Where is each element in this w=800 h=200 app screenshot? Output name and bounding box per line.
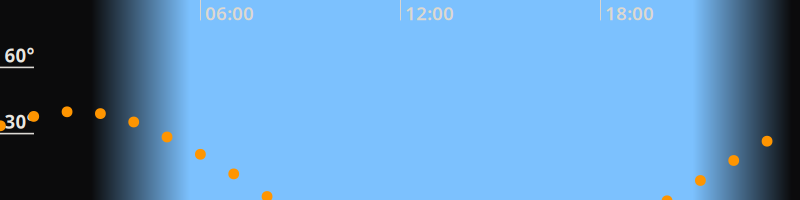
staticText: 30°	[4, 109, 34, 134]
staticText: 60°	[4, 43, 34, 68]
staticText: 18:00	[605, 0, 654, 25]
staticText: 06:00	[205, 0, 254, 25]
staticText: 12:00	[405, 0, 454, 25]
